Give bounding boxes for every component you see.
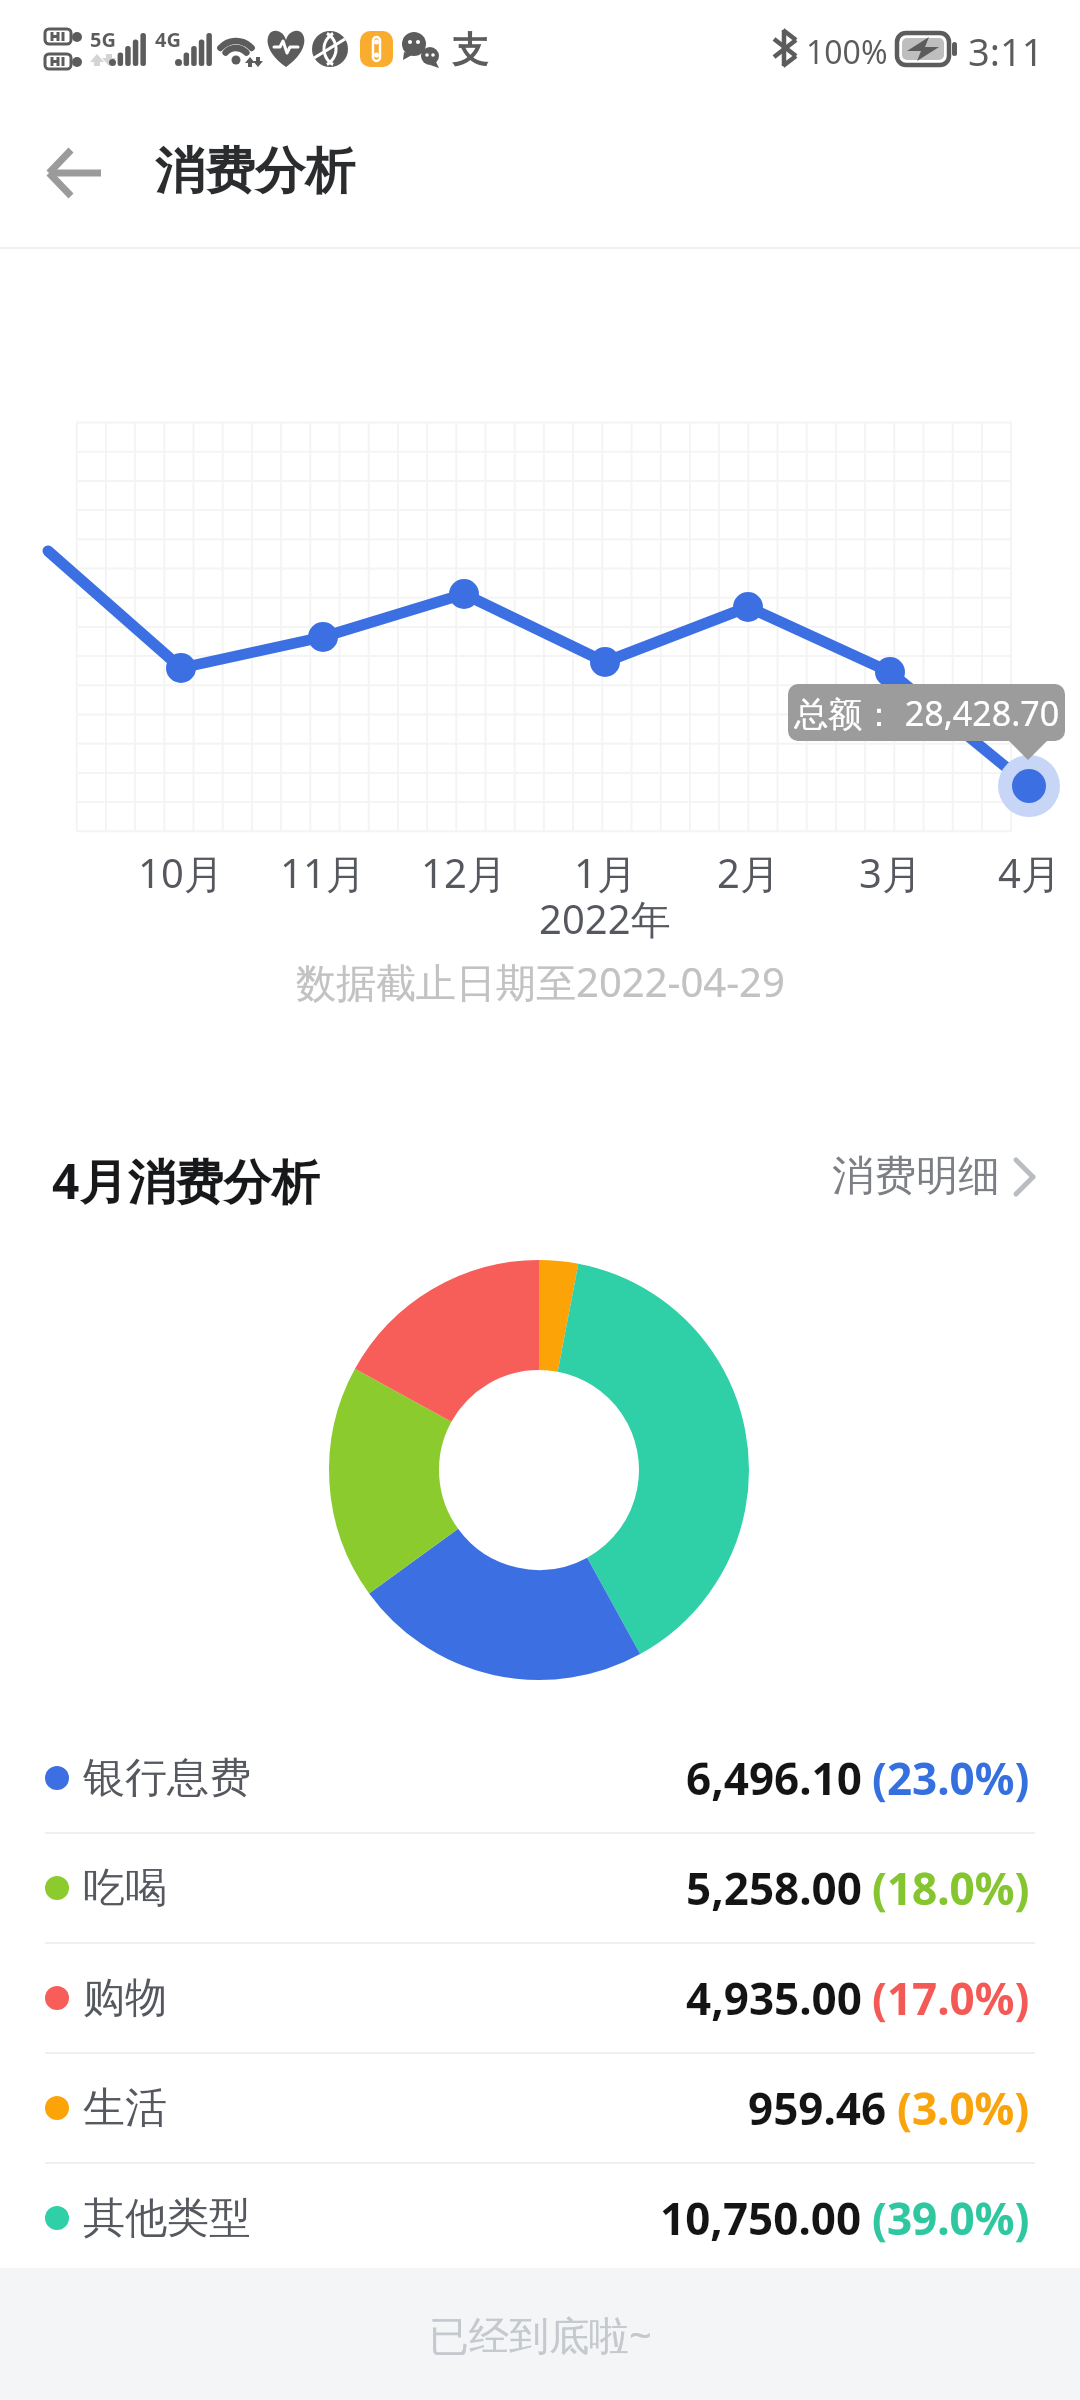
staticText: 支 [452,27,488,72]
staticText: 11月 [280,845,366,900]
staticText: 已经到底啦~ [429,2307,652,2362]
staticText: 总额： 28,428.70 [794,690,1060,736]
staticText: 购物 [83,1972,167,2025]
button[interactable]: 购物 [0,1944,1080,2052]
staticText: 6,496.10 [686,1748,862,1808]
staticText: 5G [90,26,116,53]
button[interactable] [30,135,120,211]
staticText: 消费分析 [155,140,355,203]
staticText: 10,750.00 [660,2188,862,2248]
staticText: 吃喝 [83,1862,167,1915]
staticText: 3:11 [968,25,1044,77]
staticText: 5,258.00 [686,1858,862,1918]
button[interactable]: 银行息费 [0,1724,1080,1832]
button[interactable]: 其他类型 [0,2164,1080,2272]
staticText: 100% [806,30,888,74]
staticText: 4G [155,26,181,53]
button[interactable]: 吃喝 [0,1834,1080,1942]
staticText: (3.0%) [897,2078,1030,2138]
staticText: 银行息费 [83,1752,251,1805]
staticText: 生活 [83,2082,167,2135]
staticText: 4月消费分析 [52,1148,320,1214]
staticText: 959.46 [748,2078,887,2138]
button[interactable]: 生活 [0,2054,1080,2162]
staticText: 消费明细 [832,1150,1000,1203]
staticText: 3月 [859,845,922,900]
staticText: 2月 [717,845,780,900]
staticText: 2022年 [539,891,671,946]
button[interactable]: 消费明细 [832,1150,1036,1203]
staticText: 12月 [421,845,507,900]
staticText: 数据截止日期至2022-04-29 [296,954,785,1009]
staticText: (23.0%) [872,1748,1030,1808]
staticText: 4月 [998,845,1061,900]
staticText: (18.0%) [872,1858,1030,1918]
staticText: 1月 [574,845,637,900]
staticText: (17.0%) [872,1968,1030,2028]
staticText: (39.0%) [872,2188,1030,2248]
staticText: 10月 [138,845,224,900]
staticText: 其他类型 [83,2192,251,2245]
staticText: 4,935.00 [686,1968,862,2028]
